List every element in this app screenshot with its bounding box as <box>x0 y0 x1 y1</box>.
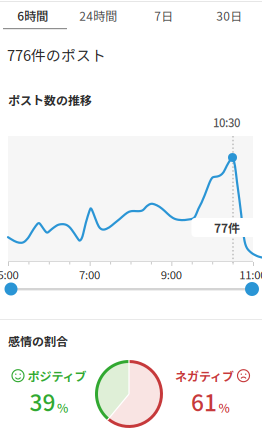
staticText: ポジティブ <box>27 367 86 384</box>
staticText: 30日 <box>216 7 242 24</box>
staticText: 5:00 <box>0 266 18 282</box>
button[interactable]: Range end <box>245 282 259 296</box>
staticText: 7日 <box>154 7 173 24</box>
button[interactable]: 30日 <box>196 1 262 30</box>
staticText: 61 <box>191 385 217 418</box>
staticText: 24時間 <box>79 7 117 24</box>
staticText: 7:00 <box>79 266 100 282</box>
staticText: % <box>57 399 68 416</box>
staticText: 6時間 <box>17 7 48 24</box>
button[interactable]: 6時間 <box>0 1 65 30</box>
staticText: 776件のポスト <box>7 44 106 65</box>
staticText: 感情の割合 <box>8 332 68 349</box>
staticText: % <box>218 399 229 416</box>
staticText: 11:00 <box>239 266 262 282</box>
button[interactable]: Range start <box>4 282 17 295</box>
staticText: 77件 <box>214 219 240 236</box>
staticText: ポスト数の推移 <box>8 91 92 108</box>
button[interactable]: 7日 <box>131 1 196 30</box>
staticText: ネガティブ <box>175 367 234 384</box>
button[interactable]: 24時間 <box>65 1 131 30</box>
staticText: 39 <box>29 385 55 418</box>
staticText: 10:30 <box>213 114 240 130</box>
staticText: 9:00 <box>161 266 182 282</box>
